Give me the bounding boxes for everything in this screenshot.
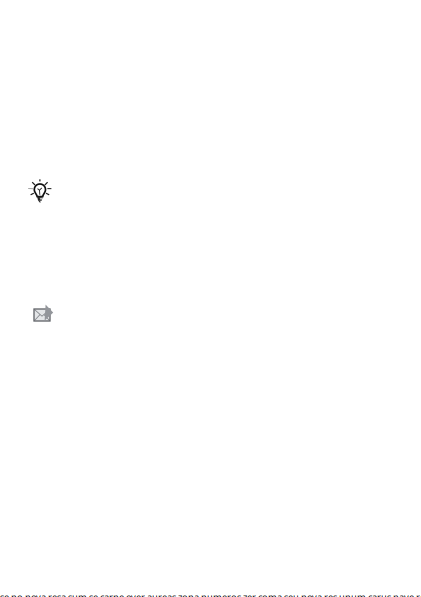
button[interactable]: Forward mail xyxy=(33,305,53,321)
button[interactable]: Idea xyxy=(28,179,52,203)
staticText: se no nova resa sum se carne over aureas… xyxy=(0,591,421,597)
